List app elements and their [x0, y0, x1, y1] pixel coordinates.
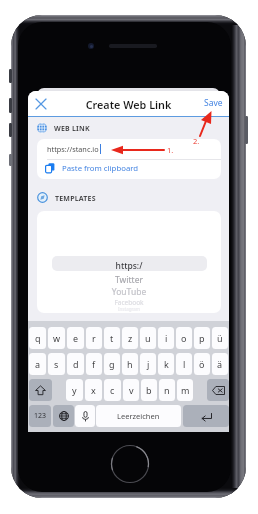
staticText: u: [145, 332, 151, 344]
staticText: Instagram: [37, 306, 221, 312]
staticText: o: [181, 332, 187, 344]
staticText: c: [110, 384, 115, 396]
button[interactable]: x: [85, 379, 102, 401]
button[interactable]: v: [123, 379, 139, 401]
button[interactable]: Save: [204, 97, 223, 109]
staticText: z: [128, 332, 133, 344]
button[interactable]: Leerzeichen: [96, 405, 181, 427]
button[interactable]: a: [29, 353, 46, 375]
staticText: r: [92, 332, 96, 344]
staticText: x: [91, 384, 96, 396]
button[interactable]: ü: [212, 327, 228, 349]
button[interactable]: s: [48, 353, 65, 375]
staticText: t: [110, 332, 114, 344]
button[interactable]: y: [66, 379, 83, 401]
button[interactable]: f: [86, 353, 102, 375]
staticText: j: [147, 358, 150, 370]
button[interactable]: t: [104, 327, 120, 349]
button[interactable]: Shift: [29, 379, 52, 401]
button[interactable]: c: [104, 379, 121, 401]
staticText: p: [199, 332, 205, 344]
staticText: Facebook: [37, 298, 221, 307]
staticText: 1.: [167, 145, 174, 155]
staticText: e: [73, 332, 79, 344]
staticText: g: [109, 358, 115, 370]
staticText: a: [35, 358, 41, 370]
staticText: b: [146, 384, 152, 396]
button[interactable]: Close: [34, 97, 48, 111]
staticText: 123: [34, 411, 47, 421]
button[interactable]: ä: [212, 353, 228, 375]
staticText: v: [129, 384, 134, 396]
staticText: d: [73, 358, 79, 370]
staticText: Twitter: [37, 274, 221, 286]
staticText: Save: [204, 97, 223, 109]
staticText: https:/: [37, 260, 221, 272]
button[interactable]: q: [29, 327, 46, 349]
button[interactable]: Paste from clipboard: [37, 158, 221, 178]
button[interactable]: u: [140, 327, 156, 349]
staticText: h: [127, 358, 133, 370]
staticText: k: [164, 358, 169, 370]
button[interactable]: ö: [194, 353, 210, 375]
button[interactable]: j: [140, 353, 156, 375]
staticText: w: [53, 332, 61, 344]
staticText: n: [164, 384, 170, 396]
staticText: TEMPLATES: [55, 194, 96, 204]
button[interactable]: o: [176, 327, 192, 349]
staticText: 2.: [193, 136, 200, 146]
staticText: https://stanc.io: [47, 144, 99, 154]
button[interactable]: Dictate: [75, 405, 95, 427]
staticText: ü: [217, 332, 223, 344]
button[interactable]: 123: [29, 405, 51, 427]
button[interactable]: n: [159, 379, 175, 401]
button[interactable]: k: [158, 353, 174, 375]
staticText: Create Web Link: [28, 97, 229, 112]
button[interactable]: z: [122, 327, 138, 349]
staticText: WEB LINK: [54, 124, 90, 134]
button[interactable]: Switch keyboard: [53, 405, 74, 427]
staticText: Leerzeichen: [117, 411, 160, 421]
staticText: i: [165, 332, 168, 344]
button[interactable]: e: [67, 327, 84, 349]
button[interactable]: d: [67, 353, 84, 375]
staticText: q: [35, 332, 41, 344]
staticText: ä: [217, 358, 223, 370]
button[interactable]: i: [158, 327, 174, 349]
staticText: l: [183, 358, 186, 370]
button[interactable]: Backspace: [207, 379, 229, 401]
button[interactable]: p: [194, 327, 210, 349]
staticText: Paste from clipboard: [62, 163, 139, 174]
staticText: YouTube: [37, 286, 221, 298]
button[interactable]: g: [104, 353, 120, 375]
staticText: ö: [199, 358, 205, 370]
staticText: m: [181, 384, 190, 396]
button[interactable]: r: [86, 327, 102, 349]
button[interactable]: w: [48, 327, 65, 349]
button[interactable]: l: [176, 353, 192, 375]
staticText: s: [54, 358, 59, 370]
button[interactable]: h: [122, 353, 138, 375]
button[interactable]: b: [141, 379, 157, 401]
button[interactable]: m: [177, 379, 193, 401]
staticText: y: [72, 384, 77, 396]
staticText: f: [92, 358, 96, 370]
button[interactable]: Return: [183, 405, 229, 427]
